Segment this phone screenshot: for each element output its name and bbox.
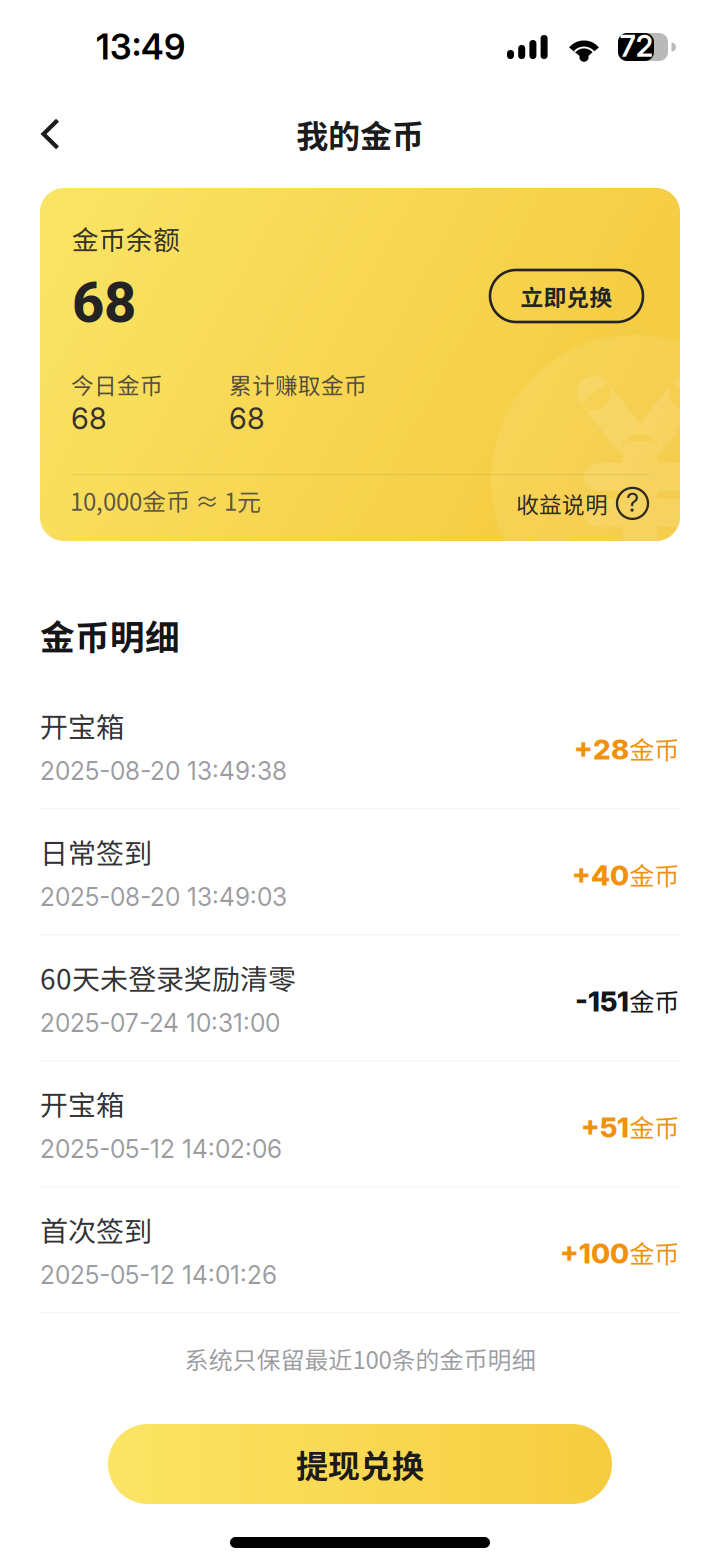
- staticText: 72: [619, 28, 653, 64]
- staticText: 收益说明: [516, 487, 608, 520]
- staticText: 金币明细: [40, 610, 180, 660]
- button[interactable]: 提现兑换: [108, 1424, 612, 1504]
- staticText: 2025-05-12 14:01:26: [40, 1260, 277, 1290]
- button[interactable]: Back: [0, 98, 88, 170]
- staticText: 金币: [629, 730, 679, 767]
- staticText: 系统只保留最近100条的金币明细: [184, 1341, 535, 1376]
- staticText: 金币: [629, 982, 679, 1019]
- staticText: 今日金币: [71, 368, 163, 401]
- staticText: 金币: [629, 856, 679, 893]
- staticText: 我的金币: [296, 111, 424, 157]
- staticText: 日常签到: [40, 831, 152, 872]
- staticText: 2025-08-20 13:49:03: [40, 882, 287, 912]
- staticText: 10,000金币 ≈ 1元: [70, 483, 261, 518]
- staticText: 2025-05-12 14:02:06: [40, 1134, 282, 1164]
- staticText: 开宝箱: [40, 705, 124, 746]
- staticText: 金币: [629, 1108, 679, 1145]
- staticText: 金币: [629, 1234, 679, 1271]
- staticText: 68: [229, 401, 265, 436]
- staticText: 立即兑换: [520, 280, 612, 312]
- staticText: 68: [72, 270, 136, 336]
- staticText: 68: [71, 401, 107, 436]
- staticText: 金币余额: [72, 219, 180, 258]
- button[interactable]: 日常签到: [0, 809, 720, 935]
- button[interactable]: 立即兑换: [490, 270, 643, 322]
- button[interactable]: 首次签到: [0, 1187, 720, 1313]
- staticText: 累计赚取金币: [229, 368, 367, 401]
- staticText: 首次签到: [40, 1209, 152, 1250]
- button[interactable]: 开宝箱: [0, 683, 720, 809]
- staticText: +51: [581, 1110, 629, 1144]
- staticText: +28: [574, 732, 629, 766]
- button[interactable]: 收益说明: [516, 487, 648, 520]
- staticText: +100: [560, 1236, 629, 1270]
- button[interactable]: 开宝箱: [0, 1061, 720, 1187]
- staticText: -151: [575, 984, 629, 1018]
- staticText: 2025-07-24 10:31:00: [40, 1008, 280, 1038]
- staticText: 提现兑换: [296, 1441, 424, 1487]
- staticText: 13:49: [96, 26, 185, 68]
- staticText: ?: [626, 487, 639, 518]
- staticText: +40: [572, 858, 629, 892]
- staticText: 开宝箱: [40, 1083, 124, 1124]
- staticText: 60天未登录奖励清零: [40, 957, 296, 998]
- button[interactable]: 60天未登录奖励清零: [0, 935, 720, 1061]
- staticText: 2025-08-20 13:49:38: [40, 756, 287, 786]
